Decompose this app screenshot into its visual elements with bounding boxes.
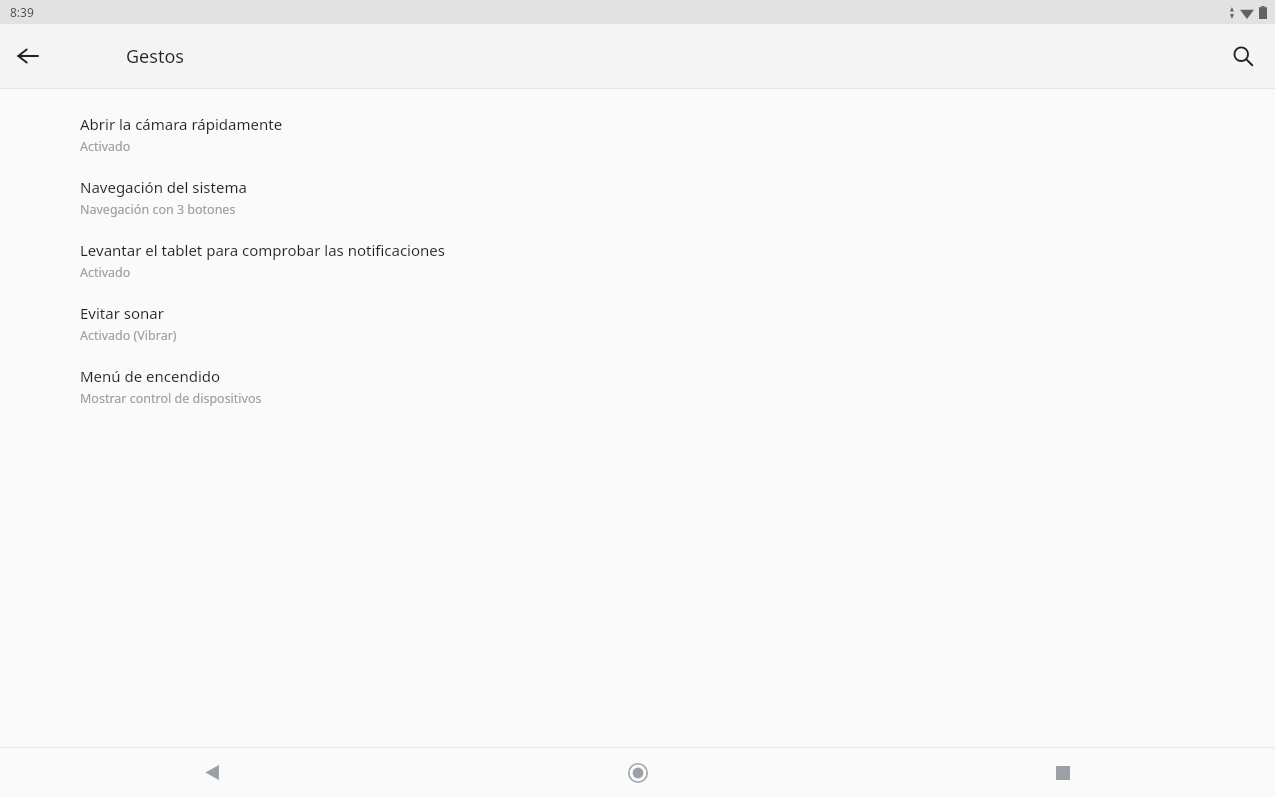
- staticText: Evitar sonar: [80, 303, 164, 323]
- staticText: Activado (Vibrar): [80, 327, 177, 344]
- button[interactable]: Menú de encendido: [0, 356, 1275, 419]
- button[interactable]: Evitar sonar: [0, 293, 1275, 356]
- button[interactable]: Abrir la cámara rápidamente: [0, 104, 1275, 167]
- staticText: 8:39: [10, 4, 34, 20]
- button[interactable]: Atrás: [4, 32, 52, 80]
- button[interactable]: Aplicaciones recientes: [850, 748, 1275, 797]
- staticText: Abrir la cámara rápidamente: [80, 114, 283, 134]
- staticText: Menú de encendido: [80, 366, 221, 386]
- button[interactable]: Levantar el tablet para comprobar las no…: [0, 230, 1275, 293]
- staticText: Mostrar control de dispositivos: [80, 390, 262, 407]
- staticText: Navegación con 3 botones: [80, 201, 236, 218]
- staticText: Activado: [80, 138, 131, 155]
- button[interactable]: Inicio: [425, 748, 850, 797]
- staticText: Levantar el tablet para comprobar las no…: [80, 240, 445, 260]
- staticText: Gestos: [126, 44, 184, 69]
- button[interactable]: Buscar: [1219, 32, 1267, 80]
- staticText: Navegación del sistema: [80, 177, 247, 197]
- staticText: Activado: [80, 264, 131, 281]
- button[interactable]: Atrás: [0, 748, 425, 797]
- button[interactable]: Navegación del sistema: [0, 167, 1275, 230]
